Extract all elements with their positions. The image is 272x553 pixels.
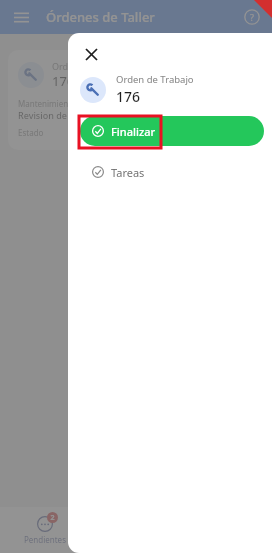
staticText: Orden de Trabajo xyxy=(52,60,126,72)
staticText: 176 xyxy=(52,72,75,90)
staticText: Mantenimiento xyxy=(18,98,76,109)
staticText: Pendientes xyxy=(24,534,66,545)
staticText: ? xyxy=(250,11,254,23)
staticText: Revision de luces xyxy=(18,109,92,121)
button[interactable]: Finalizar xyxy=(80,116,264,146)
button[interactable]: Tareas xyxy=(80,158,264,186)
button[interactable]: Help xyxy=(240,5,264,29)
button[interactable]: Close xyxy=(80,43,102,65)
staticText: Finalizar xyxy=(111,124,156,139)
staticText: Tareas xyxy=(111,165,145,180)
staticText: Órdenes de Taller xyxy=(46,8,155,26)
button[interactable]: 2 xyxy=(0,507,90,553)
button[interactable]: Orden de Trabajo xyxy=(8,50,264,150)
staticText: Estado xyxy=(18,127,44,138)
button[interactable]: Menu xyxy=(8,4,34,30)
staticText: Orden de Trabajo xyxy=(116,73,194,86)
staticText: 2 xyxy=(50,513,55,523)
staticText: 176 xyxy=(116,87,141,106)
